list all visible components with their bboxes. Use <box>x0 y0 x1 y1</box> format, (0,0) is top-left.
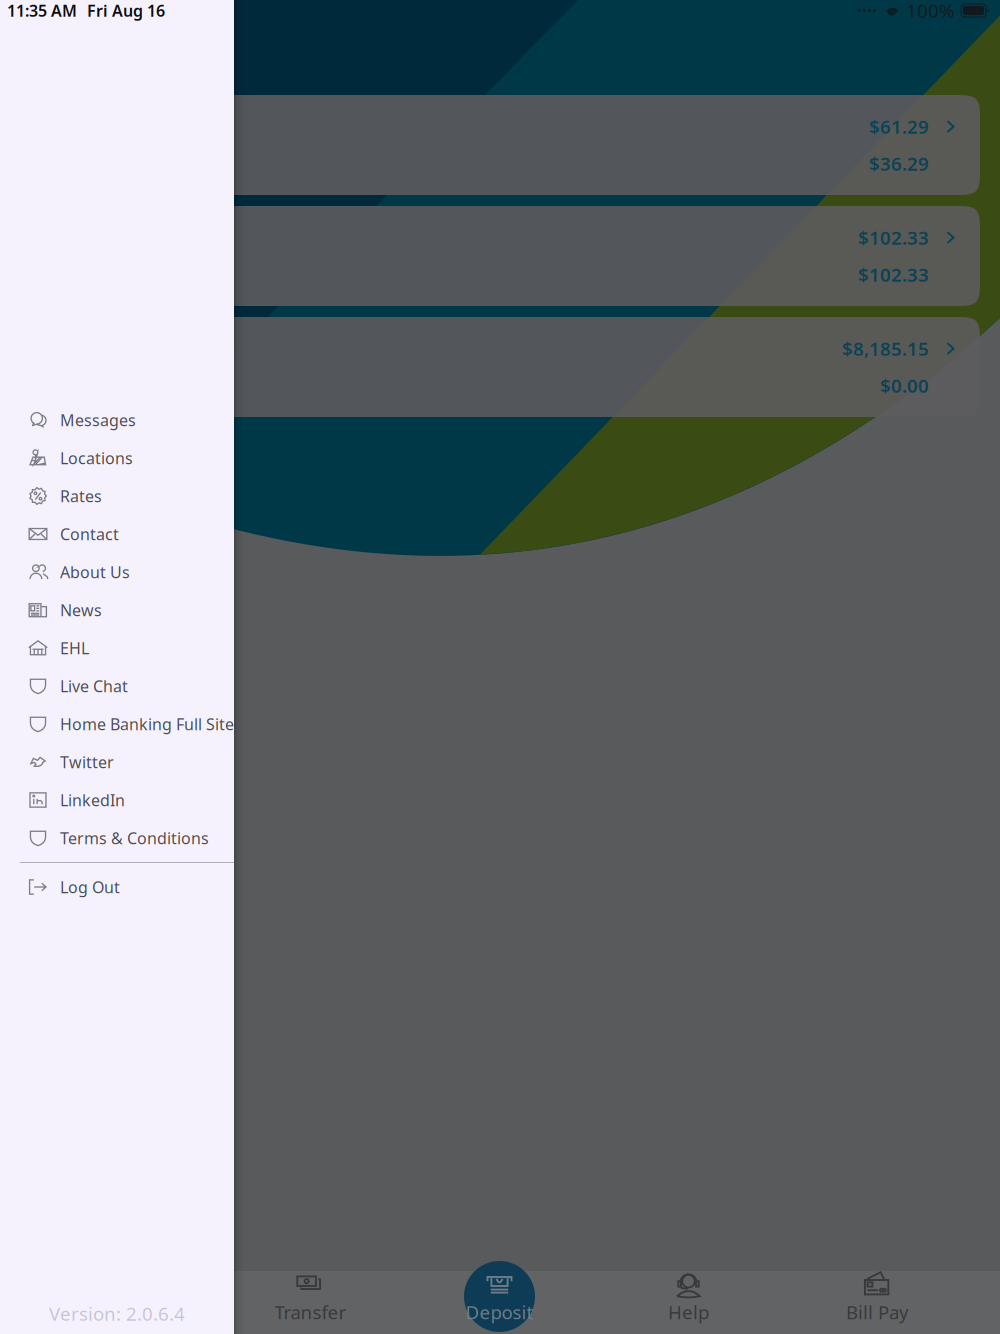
button[interactable]: Live Chat <box>0 667 234 705</box>
staticText: Rates <box>60 485 102 507</box>
button[interactable]: Checking account, available $61.29, curr… <box>20 95 980 195</box>
button[interactable]: Savings account, available $102.33, curr… <box>20 206 980 306</box>
button[interactable]: Twitter <box>0 743 234 781</box>
staticText: Home Banking Full Site <box>60 713 234 735</box>
staticText: $0.00 <box>880 373 929 398</box>
button[interactable]: News <box>0 591 234 629</box>
button[interactable]: About Us <box>0 553 234 591</box>
staticText: 100% <box>906 0 955 23</box>
staticText: EHL <box>60 637 89 659</box>
staticText: Help <box>668 1300 709 1324</box>
staticText: Live Chat <box>60 675 128 697</box>
staticText: $102.33 <box>858 262 929 287</box>
button[interactable]: Deposit <box>405 1261 594 1332</box>
staticText: Contact <box>60 523 119 545</box>
staticText: Deposit <box>465 1300 533 1324</box>
staticText: LinkedIn <box>60 789 125 811</box>
staticText: $8,185.15 <box>842 336 929 361</box>
button[interactable]: Contact <box>0 515 234 553</box>
staticText: 11:35 AM <box>7 0 77 21</box>
button[interactable]: Transfer <box>216 1261 405 1332</box>
button[interactable]: EHL <box>0 629 234 667</box>
staticText: Messages <box>60 409 136 431</box>
button[interactable]: Log Out <box>0 868 234 906</box>
button[interactable]: Home Banking Full Site <box>0 705 234 743</box>
staticText: $36.29 <box>869 151 929 176</box>
staticText: Terms & Conditions <box>60 827 209 849</box>
button[interactable]: LinkedIn <box>0 781 234 819</box>
staticText: Locations <box>60 447 133 469</box>
staticText: Transfer <box>274 1300 346 1324</box>
staticText: $61.29 <box>869 114 929 139</box>
staticText: Bill Pay <box>846 1300 909 1324</box>
button[interactable]: Help <box>594 1261 783 1332</box>
staticText: Log Out <box>60 876 120 898</box>
button[interactable]: Line of credit, available $8,185.15, cur… <box>20 317 980 417</box>
staticText: Twitter <box>60 751 114 773</box>
staticText: Fri Aug 16 <box>87 0 165 21</box>
button[interactable]: Locations <box>0 439 234 477</box>
staticText: News <box>60 599 102 621</box>
button[interactable]: Messages <box>0 401 234 439</box>
staticText: $102.33 <box>858 225 929 250</box>
button[interactable]: Rates <box>0 477 234 515</box>
button[interactable]: Terms & Conditions <box>0 819 234 857</box>
staticText: Version: 2.0.6.4 <box>49 1301 185 1326</box>
button[interactable]: Bill Pay <box>783 1261 972 1332</box>
staticText: About Us <box>60 561 130 583</box>
